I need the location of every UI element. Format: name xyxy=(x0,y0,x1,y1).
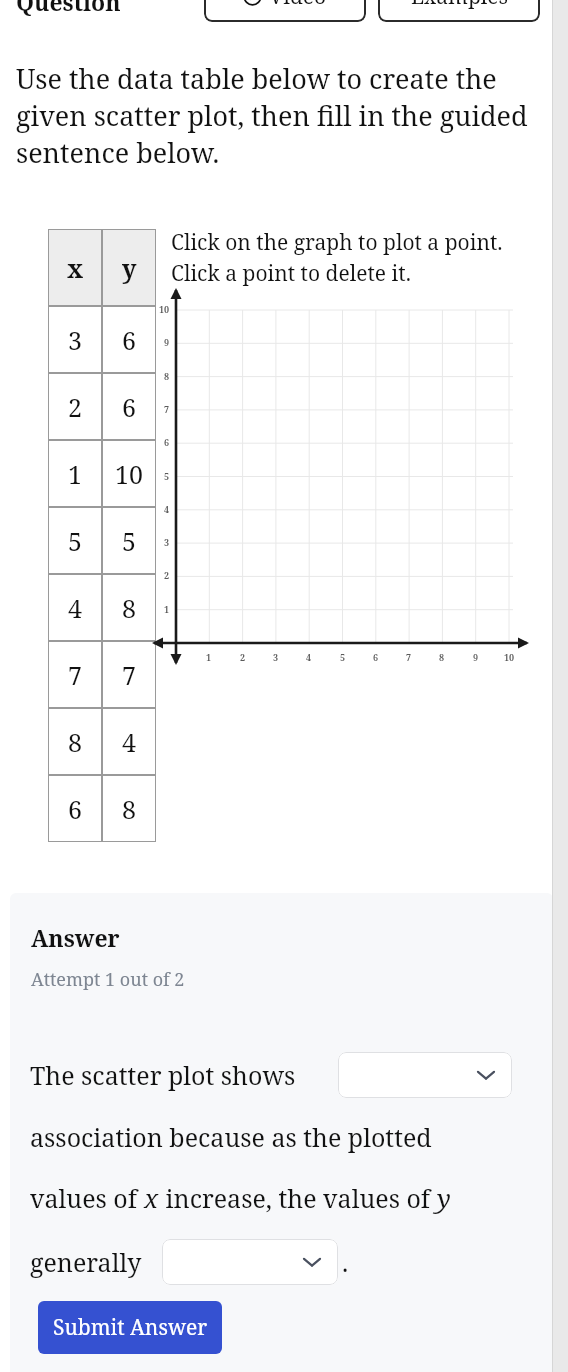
staticText: 10 xyxy=(504,651,515,663)
button[interactable]: Video xyxy=(204,0,366,22)
staticText: 1 xyxy=(206,651,212,663)
staticText: Use the data table below to create the g… xyxy=(16,60,550,171)
staticText: 8 xyxy=(68,725,82,759)
staticText: 6 xyxy=(122,390,136,424)
staticText: Answer xyxy=(31,922,120,953)
staticText: x xyxy=(144,1180,159,1215)
staticText: 7 xyxy=(406,651,412,663)
staticText: increase, the values of xyxy=(159,1181,437,1215)
staticText: 5 xyxy=(122,524,136,558)
staticText: 9 xyxy=(164,336,170,348)
button[interactable]: Examples xyxy=(378,0,540,22)
staticText: Click on the graph to plot a point. Clic… xyxy=(171,228,517,287)
staticText: Video xyxy=(269,0,327,11)
staticText: 5 xyxy=(164,470,170,482)
staticText: 3 xyxy=(273,651,279,663)
staticText: The scatter plot shows xyxy=(30,1058,296,1092)
staticText: 4 xyxy=(68,591,82,625)
staticText: 4 xyxy=(306,651,312,663)
button[interactable]: Select trend direction xyxy=(162,1239,338,1285)
staticText: 8 xyxy=(122,591,136,625)
staticText: y xyxy=(437,1180,451,1215)
staticText: 8 xyxy=(164,370,170,382)
staticText: . xyxy=(342,1245,349,1279)
staticText: Attempt 1 out of 2 xyxy=(31,967,185,992)
staticText: 7 xyxy=(68,658,82,692)
staticText: 4 xyxy=(164,503,170,515)
staticText: 3 xyxy=(164,536,170,548)
staticText: 10 xyxy=(159,303,170,315)
staticText: 4 xyxy=(122,725,136,759)
button[interactable]: Submit Answer xyxy=(38,1301,222,1354)
staticText: 5 xyxy=(68,524,82,558)
staticText: 10 xyxy=(115,457,143,491)
staticText: x xyxy=(67,251,84,285)
staticText: 6 xyxy=(122,323,136,357)
staticText: Examples xyxy=(411,0,508,11)
staticText: 7 xyxy=(122,658,136,692)
staticText: values of xyxy=(30,1181,144,1215)
staticText: Question xyxy=(16,0,121,17)
staticText: 8 xyxy=(122,792,136,826)
staticText: 3 xyxy=(68,323,82,357)
staticText: 6 xyxy=(373,651,379,663)
staticText: association because as the plotted xyxy=(30,1120,432,1154)
staticText: 9 xyxy=(473,651,479,663)
staticText: 5 xyxy=(340,651,346,663)
staticText: 8 xyxy=(439,651,445,663)
staticText: 6 xyxy=(164,436,170,448)
staticText: 2 xyxy=(240,651,246,663)
staticText: 1 xyxy=(164,603,170,615)
staticText: 2 xyxy=(68,390,82,424)
staticText: 7 xyxy=(164,403,170,415)
staticText: 1 xyxy=(68,457,82,491)
staticText: y xyxy=(122,251,137,285)
staticText: 6 xyxy=(68,792,82,826)
staticText: generally xyxy=(30,1245,142,1279)
staticText: Submit Answer xyxy=(53,1313,208,1342)
staticText: 2 xyxy=(164,569,170,581)
button[interactable]: Select association type xyxy=(338,1052,512,1098)
